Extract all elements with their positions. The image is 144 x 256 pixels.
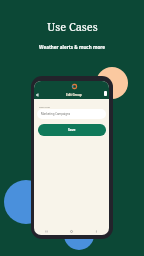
button[interactable]: Save [38,124,106,136]
button[interactable]: Delete [104,91,107,96]
staticText: Save [68,128,76,132]
button[interactable]: Marketing Campaigns [37,109,106,119]
button[interactable]: Back [34,91,41,99]
button[interactable]: Recents [34,230,59,233]
button[interactable]: Back [84,230,109,233]
button[interactable]: Home [59,230,84,233]
staticText: Use Cases [47,19,98,34]
staticText: Edit Group [66,93,82,97]
staticText: Marketing Campaigns [41,112,70,116]
staticText: Group Name [39,106,50,108]
staticText: Weather alerts & much more [39,44,105,50]
